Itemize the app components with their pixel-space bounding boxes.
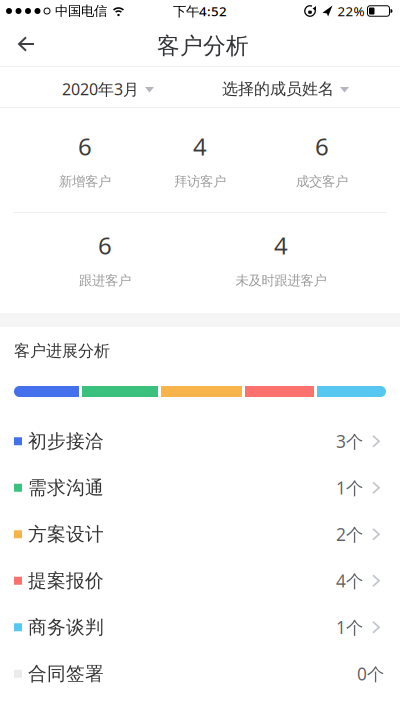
button[interactable]: 提案报价 xyxy=(0,557,400,604)
button[interactable]: 合同签署 xyxy=(0,650,400,697)
button[interactable]: 方案设计 xyxy=(0,511,400,557)
button[interactable]: 2020年3月 xyxy=(62,67,154,107)
staticText: 2020年3月 xyxy=(62,78,139,100)
staticText: 跟进客户 xyxy=(79,272,131,289)
staticText: 提案报价 xyxy=(28,569,104,592)
staticText: 客户分析 xyxy=(157,32,249,60)
staticText: 2个 xyxy=(336,523,363,546)
staticText: 成交客户 xyxy=(296,173,348,190)
staticText: 下午4:52 xyxy=(173,2,227,20)
staticText: 新增客户 xyxy=(59,173,111,190)
button[interactable]: Back xyxy=(0,22,49,66)
staticText: 方案设计 xyxy=(28,523,104,546)
button[interactable]: 初步接洽 xyxy=(0,418,400,464)
button[interactable]: 需求沟通 xyxy=(0,464,400,511)
staticText: 6 xyxy=(78,130,92,162)
staticText: 拜访客户 xyxy=(174,173,226,190)
staticText: 中国电信 xyxy=(55,3,107,19)
staticText: 4 xyxy=(274,229,288,261)
staticText: 4 xyxy=(193,130,207,162)
button[interactable]: 选择的成员姓名 xyxy=(222,67,349,107)
staticText: 选择的成员姓名 xyxy=(222,79,334,99)
staticText: 商务谈判 xyxy=(28,616,104,639)
staticText: 6 xyxy=(98,229,112,261)
staticText: 需求沟通 xyxy=(28,476,104,499)
button[interactable]: 商务谈判 xyxy=(0,604,400,650)
staticText: 客户进展分析 xyxy=(14,341,110,361)
staticText: 初步接洽 xyxy=(28,430,104,453)
staticText: 3个 xyxy=(336,430,363,453)
staticText: 22% xyxy=(337,2,364,20)
staticText: 未及时跟进客户 xyxy=(235,272,326,289)
staticText: 6 xyxy=(315,130,329,162)
staticText: 4个 xyxy=(336,569,363,592)
staticText: 1个 xyxy=(336,616,363,639)
staticText: 合同签署 xyxy=(28,662,104,685)
staticText: 1个 xyxy=(336,476,363,499)
staticText: 0个 xyxy=(357,662,384,685)
